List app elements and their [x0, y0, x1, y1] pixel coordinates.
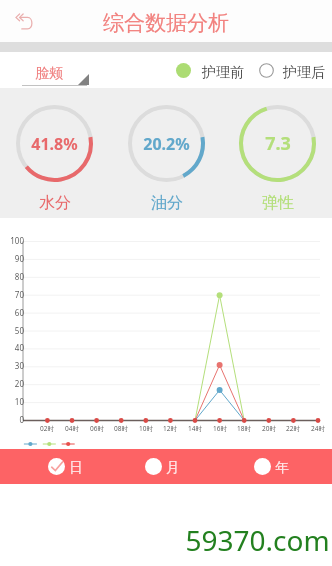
staticText: 油分	[151, 193, 183, 213]
staticText: 18时	[231, 424, 257, 433]
staticText: 80	[0, 271, 24, 282]
staticText: 24时	[305, 424, 331, 433]
staticText: 护理后	[283, 64, 325, 82]
staticText: 0	[0, 414, 24, 425]
button[interactable]: 脸颊	[22, 52, 89, 88]
staticText: 16时	[207, 424, 233, 433]
staticText: 12时	[157, 424, 183, 433]
staticText: 20	[0, 378, 24, 389]
button[interactable]: 护理前	[176, 61, 244, 79]
staticText: 59370.com	[185, 521, 330, 559]
staticText: 70	[0, 289, 24, 300]
button[interactable]: 护理后	[259, 61, 325, 79]
staticText: 06时	[84, 424, 110, 433]
staticText: 20.2%	[143, 133, 190, 155]
staticText: 20时	[256, 424, 282, 433]
button[interactable]: Back	[11, 8, 37, 34]
staticText: 年	[275, 459, 289, 476]
staticText: 14时	[182, 424, 208, 433]
staticText: 7.3	[265, 131, 291, 156]
staticText: 护理前	[202, 64, 244, 82]
staticText: 月	[166, 459, 180, 476]
button[interactable]: 年	[254, 458, 289, 475]
staticText: 10时	[133, 424, 159, 433]
staticText: 综合数据分析	[103, 10, 229, 36]
staticText: 50	[0, 325, 24, 336]
staticText: 100	[0, 235, 24, 246]
staticText: 22时	[280, 424, 306, 433]
staticText: 02时	[34, 424, 60, 433]
staticText: 40	[0, 342, 24, 353]
staticText: 90	[0, 253, 24, 264]
staticText: 04时	[59, 424, 85, 433]
staticText: 08时	[108, 424, 134, 433]
staticText: 10	[0, 396, 24, 407]
staticText: 60	[0, 307, 24, 318]
staticText: 30	[0, 360, 24, 371]
staticText: 日	[69, 459, 83, 476]
staticText: 41.8%	[31, 133, 78, 155]
staticText: 水分	[39, 193, 71, 213]
staticText: 脸颊	[35, 65, 63, 83]
staticText: 弹性	[262, 193, 294, 213]
button[interactable]: 日	[48, 458, 83, 475]
button[interactable]: 月	[145, 458, 180, 475]
